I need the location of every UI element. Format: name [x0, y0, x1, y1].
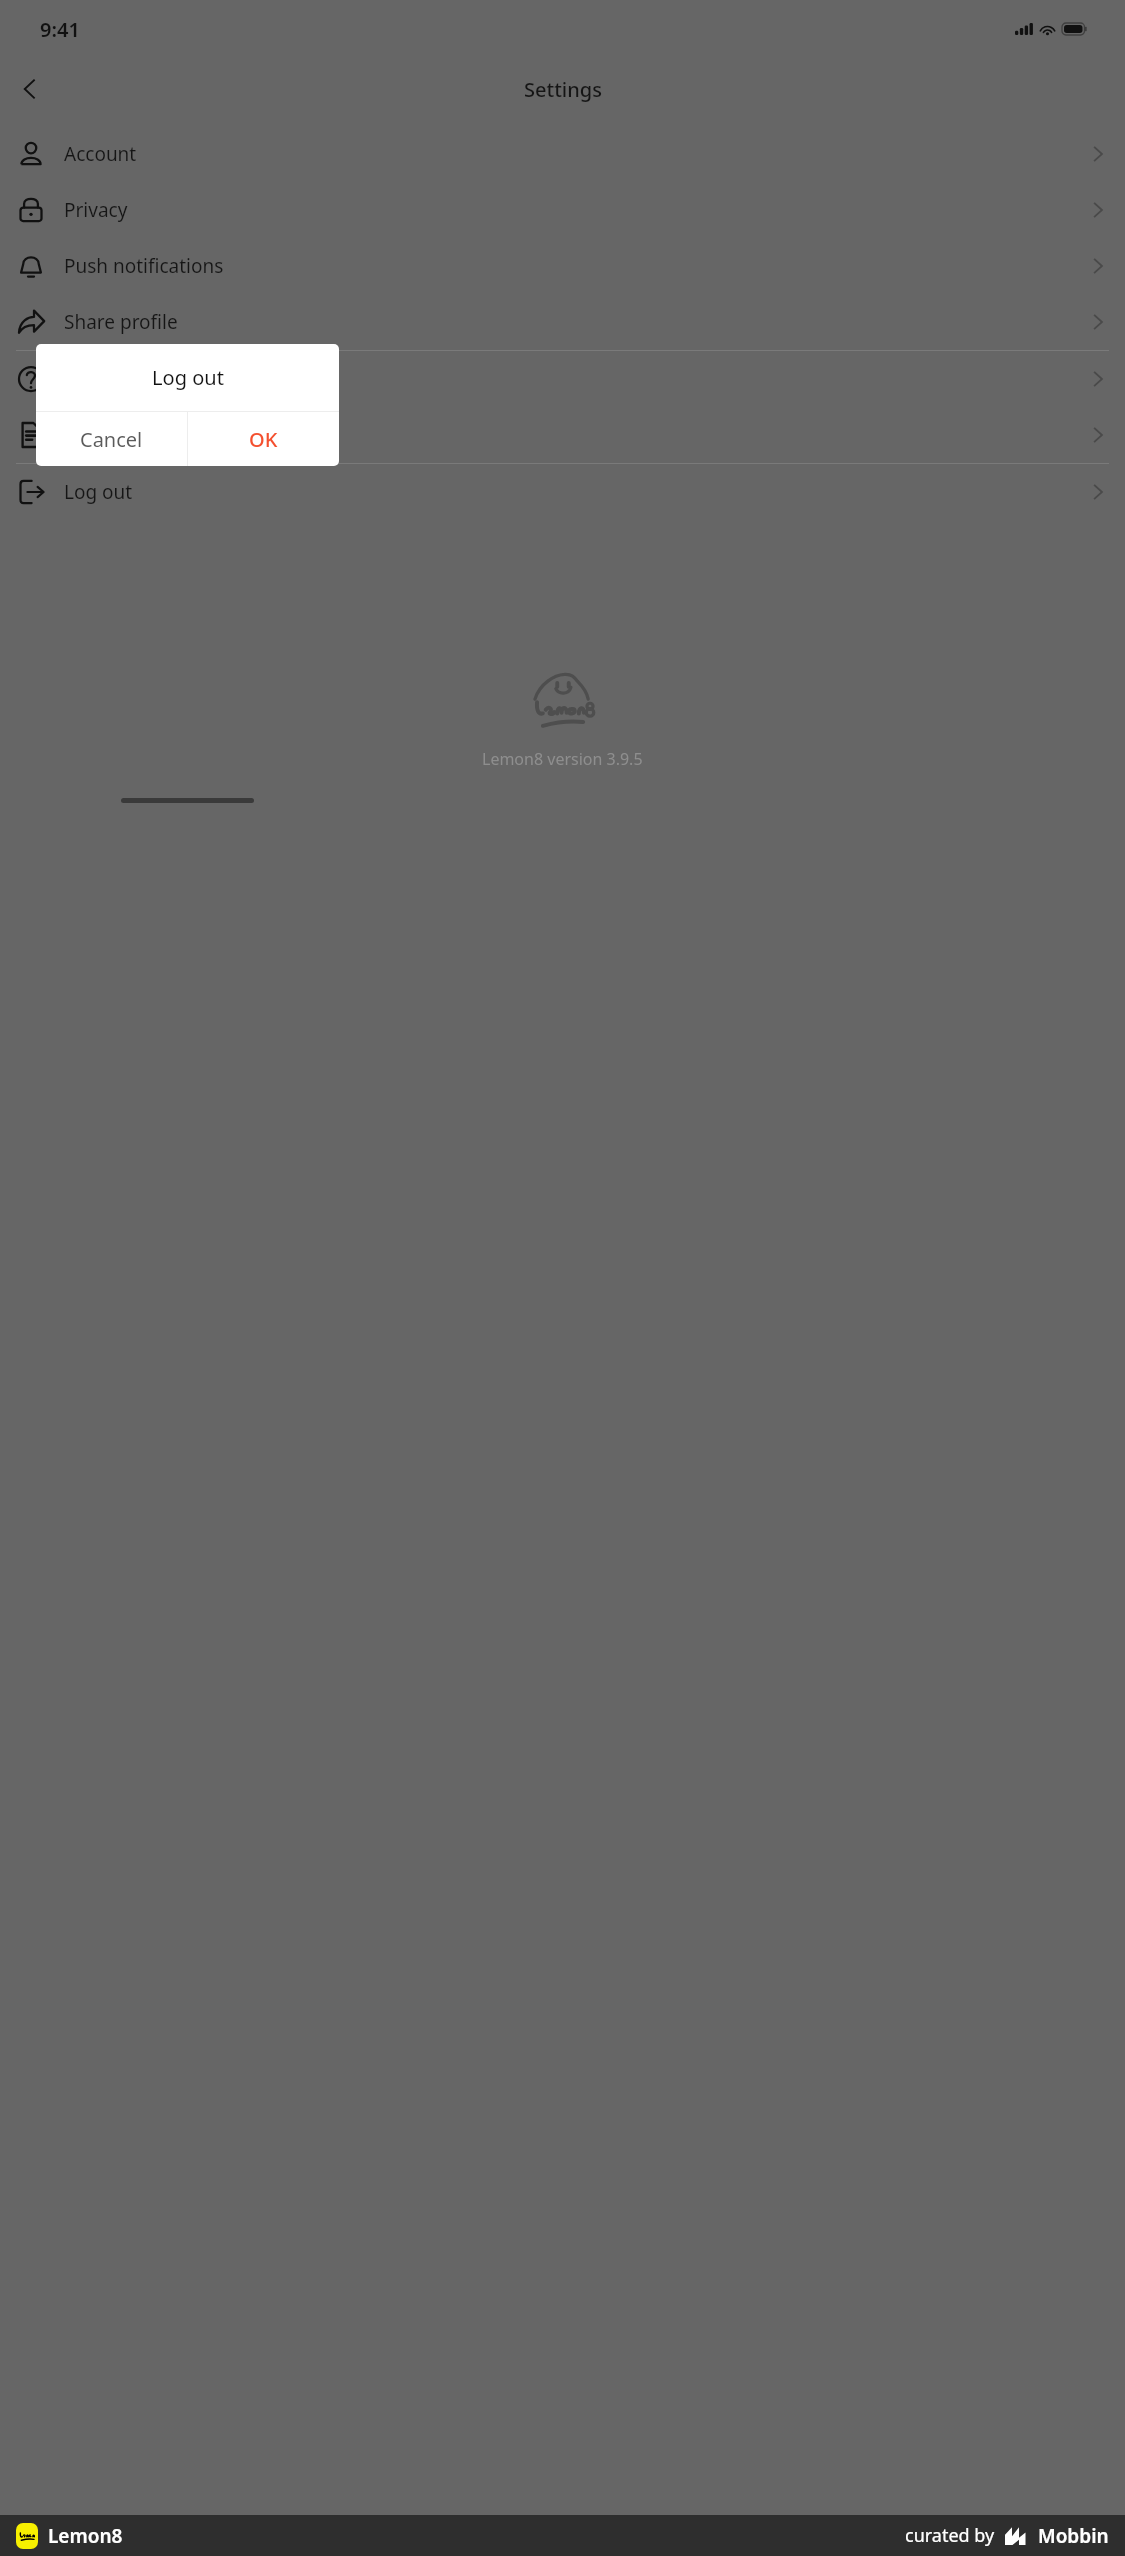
staticText: Lemon8 version 3.9.5 — [482, 748, 643, 770]
button[interactable]: Account — [0, 126, 1125, 182]
button[interactable]: Back — [6, 65, 54, 113]
button[interactable]: Push notifications — [0, 238, 1125, 294]
button[interactable]: OK — [188, 412, 339, 466]
staticText: Terms & policies — [64, 422, 1089, 448]
staticText: Privacy — [64, 197, 1089, 223]
staticText: Lemon8 — [48, 2523, 123, 2549]
staticText: Account — [64, 141, 1089, 167]
staticText: Cancel — [80, 426, 143, 453]
staticText: 9:41 — [40, 16, 80, 43]
button[interactable]: Help Center — [0, 351, 1125, 407]
staticText: curated by — [905, 2523, 995, 2548]
button[interactable]: Share profile — [0, 294, 1125, 350]
staticText: Push notifications — [64, 253, 1089, 279]
staticText: OK — [249, 426, 278, 453]
button[interactable]: Terms & policies — [0, 407, 1125, 463]
staticText: Mobbin — [1038, 2523, 1109, 2549]
button[interactable]: Cancel — [36, 412, 187, 466]
button[interactable]: Privacy — [0, 182, 1125, 238]
staticText: Share profile — [64, 309, 1089, 335]
staticText: Settings — [524, 76, 602, 103]
staticText: Log out — [152, 364, 224, 391]
staticText: Help Center — [64, 366, 1089, 392]
button[interactable]: Log out — [0, 464, 1125, 520]
staticText: Log out — [64, 479, 1089, 505]
